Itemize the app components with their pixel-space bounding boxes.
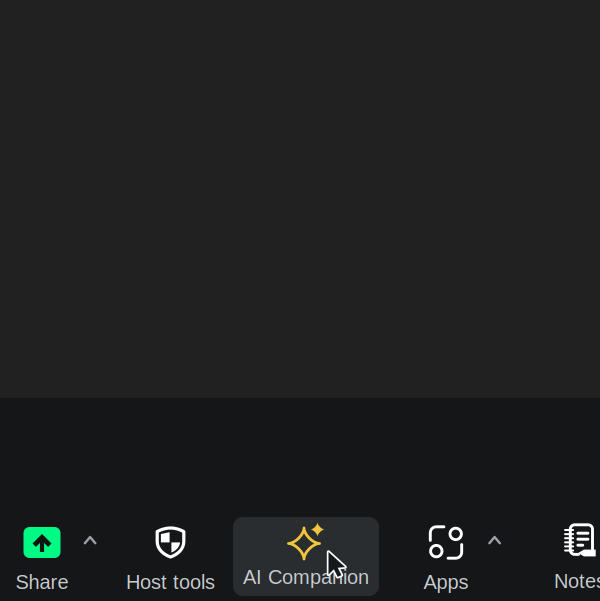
button[interactable]: Share <box>6 517 78 596</box>
button[interactable]: AI Companion <box>233 517 379 596</box>
button[interactable]: Share options <box>78 517 102 596</box>
staticText: Share <box>15 571 68 593</box>
button[interactable]: Apps <box>412 517 480 596</box>
staticText: AI Companion <box>243 566 369 588</box>
button[interactable]: Apps options <box>481 517 508 596</box>
staticText: Host tools <box>126 571 215 593</box>
button[interactable]: Host tools <box>112 517 229 596</box>
staticText: Apps <box>423 571 468 593</box>
button[interactable]: Notes <box>542 517 600 596</box>
staticText: Notes <box>554 570 600 592</box>
